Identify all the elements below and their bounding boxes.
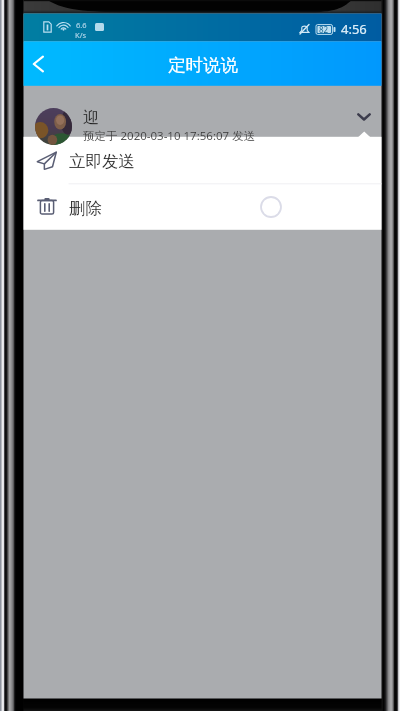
staticText: 定时说说 (168, 54, 238, 76)
button[interactable]: Back (20, 47, 54, 81)
staticText: 立即发送 (69, 151, 135, 172)
button[interactable]: 删除 (24, 184, 382, 230)
staticText: 6.6 (76, 20, 87, 30)
staticText: 4:56 (341, 20, 367, 38)
button[interactable]: 迎 (24, 86, 382, 140)
button[interactable]: 立即发送 (24, 137, 382, 184)
staticText: 删除 (69, 198, 102, 219)
staticText: K/s (75, 30, 87, 40)
staticText: 预定于 2020-03-10 17:56:07 发送 (83, 128, 256, 144)
staticText: 82 (319, 24, 329, 35)
button[interactable]: Expand (349, 102, 379, 132)
staticText: 迎 (83, 108, 99, 128)
